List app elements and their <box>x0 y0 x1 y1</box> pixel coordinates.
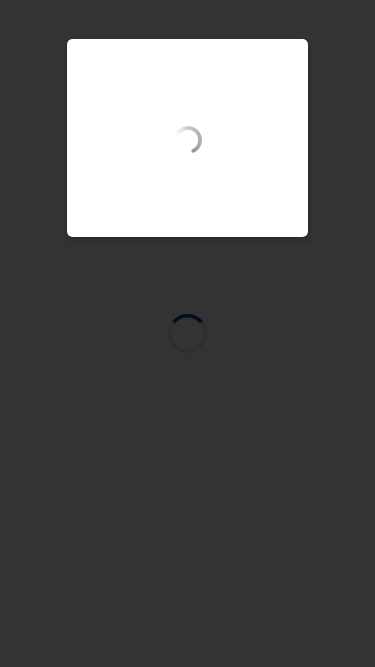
button[interactable]: Content loading <box>67 39 308 237</box>
other: Loading <box>168 314 207 353</box>
